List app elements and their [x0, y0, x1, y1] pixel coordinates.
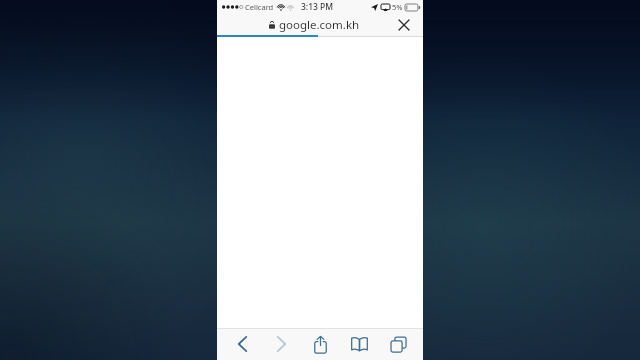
- button[interactable]: Tabs: [381, 329, 415, 359]
- button[interactable]: google.com.kh: [269, 17, 360, 33]
- button[interactable]: Back: [225, 329, 259, 359]
- staticText: 5%: [392, 2, 403, 12]
- staticText: 3:13 PM: [301, 1, 334, 13]
- staticText: Cellcard: [245, 2, 274, 12]
- button[interactable]: Share: [303, 329, 337, 359]
- button[interactable]: Forward: [264, 329, 298, 359]
- button[interactable]: Bookmarks: [342, 329, 376, 359]
- button[interactable]: Stop loading: [395, 16, 413, 34]
- staticText: google.com.kh: [279, 17, 360, 33]
